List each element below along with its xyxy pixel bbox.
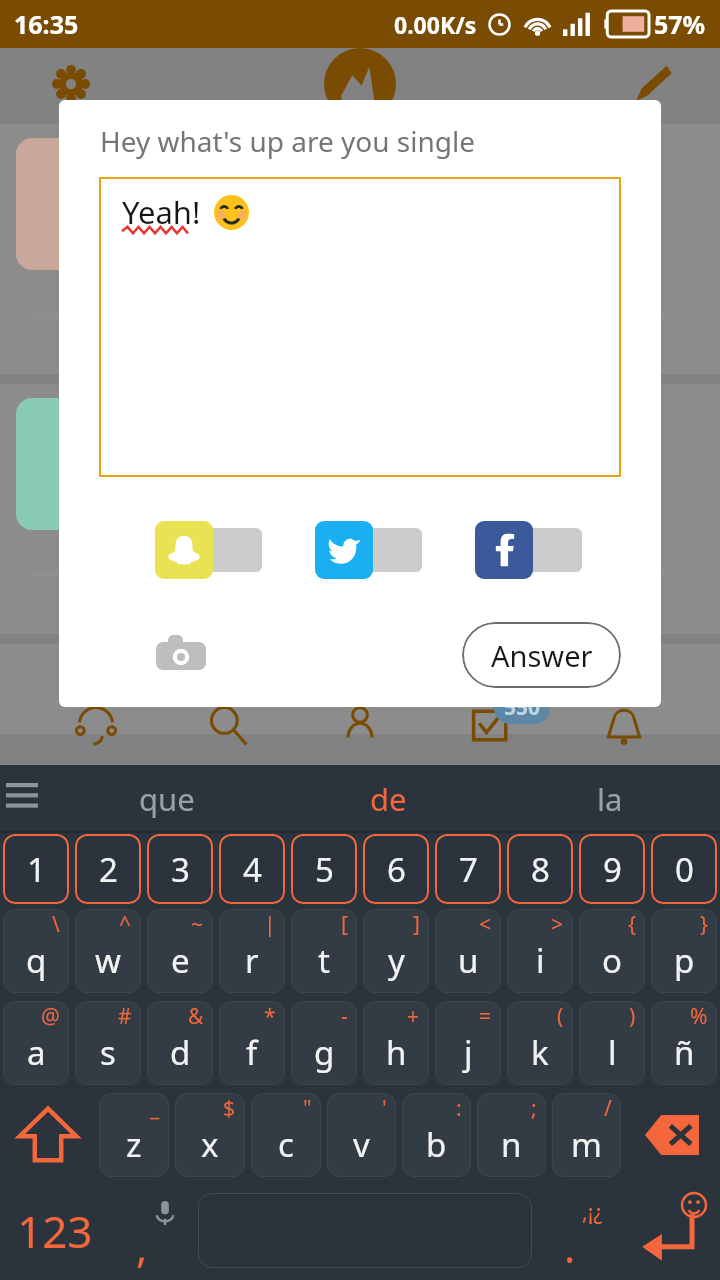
button[interactable]: "	[251, 1093, 321, 1177]
button[interactable]: *	[219, 1001, 285, 1085]
staticText: m	[571, 1122, 602, 1167]
staticText: 1	[27, 847, 46, 892]
button[interactable]: :	[402, 1093, 471, 1177]
button[interactable]: Twitter	[315, 521, 422, 579]
button[interactable]: )	[579, 1001, 645, 1085]
staticText: Hey what's up are you single	[100, 122, 475, 160]
staticText: 6	[387, 847, 406, 892]
staticText: ,¡¿	[582, 1198, 603, 1227]
staticText: ]	[413, 910, 420, 939]
button[interactable]: [	[291, 909, 357, 993]
button[interactable]: -	[291, 1001, 357, 1085]
staticText: 4	[243, 847, 262, 892]
button[interactable]: }	[651, 909, 717, 993]
staticText: #	[118, 1002, 132, 1031]
button[interactable]: Notifications	[588, 690, 660, 762]
button[interactable]: Answer	[462, 622, 621, 688]
button[interactable]: \	[3, 909, 69, 993]
button[interactable]: '	[327, 1093, 396, 1177]
staticText: 57%	[654, 7, 706, 41]
button[interactable]: 123	[0, 1181, 110, 1280]
button[interactable]: de	[278, 765, 499, 833]
staticText: *	[264, 1002, 276, 1031]
staticText: 16:35	[14, 7, 79, 41]
button[interactable]: Messages	[456, 690, 528, 762]
button[interactable]: |	[219, 909, 285, 993]
button[interactable]: la	[499, 765, 720, 833]
button[interactable]: 6	[363, 834, 429, 904]
button[interactable]: /	[552, 1093, 621, 1177]
button[interactable]: $	[175, 1093, 245, 1177]
staticText: 5	[315, 847, 334, 892]
button[interactable]: 0	[651, 834, 717, 904]
staticText: q	[26, 938, 47, 983]
staticText: :	[456, 1094, 462, 1123]
button[interactable]: =	[435, 1001, 501, 1085]
staticText: Yeah!	[122, 191, 201, 233]
staticText: +	[407, 1002, 420, 1031]
button[interactable]: 4	[219, 834, 285, 904]
button[interactable]: 5	[291, 834, 357, 904]
staticText: }	[700, 910, 708, 939]
button[interactable]: (	[507, 1001, 573, 1085]
staticText: d	[170, 1030, 191, 1075]
button[interactable]: ,	[110, 1181, 194, 1280]
staticText: p	[674, 938, 695, 983]
staticText: \	[52, 910, 60, 939]
staticText: @	[41, 1002, 60, 1031]
button[interactable]: #	[75, 1001, 141, 1085]
button[interactable]: que	[56, 765, 278, 833]
button[interactable]: Enter	[620, 1181, 720, 1280]
staticText: z	[126, 1122, 142, 1167]
button[interactable]: Camera	[151, 625, 211, 685]
button[interactable]: >	[507, 909, 573, 993]
button[interactable]: Backspace	[624, 1089, 720, 1181]
button[interactable]: Keyboard menu	[6, 783, 38, 815]
button[interactable]: 9	[579, 834, 645, 904]
button[interactable]: Home	[60, 690, 132, 762]
staticText: ñ	[674, 1030, 695, 1075]
staticText: s	[100, 1030, 116, 1075]
button[interactable]: +	[363, 1001, 429, 1085]
button[interactable]: Shift	[0, 1089, 96, 1181]
staticText: )	[629, 1002, 636, 1031]
staticText: ;	[531, 1094, 537, 1123]
staticText: g	[314, 1030, 335, 1075]
button[interactable]: ]	[363, 909, 429, 993]
button[interactable]: 3	[147, 834, 213, 904]
button[interactable]: 8	[507, 834, 573, 904]
button[interactable]: Facebook	[475, 521, 582, 579]
button[interactable]: @	[3, 1001, 69, 1085]
staticText: k	[531, 1030, 549, 1075]
button[interactable]: Yeah!	[99, 177, 621, 477]
staticText: [	[341, 910, 348, 939]
button[interactable]: Snapchat	[155, 521, 262, 579]
button[interactable]: 2	[75, 834, 141, 904]
button[interactable]: {	[579, 909, 645, 993]
staticText: {	[628, 910, 636, 939]
button[interactable]: Profile	[324, 690, 396, 762]
button[interactable]: Space	[198, 1193, 532, 1268]
staticText: ,	[136, 1218, 148, 1275]
staticText: i	[536, 938, 545, 983]
button[interactable]: 1	[3, 834, 69, 904]
button[interactable]: _	[99, 1093, 169, 1177]
staticText: y	[388, 938, 405, 983]
button[interactable]: 7	[435, 834, 501, 904]
button[interactable]: .	[536, 1181, 620, 1280]
button[interactable]: Search	[192, 690, 264, 762]
staticText: '	[382, 1094, 387, 1123]
staticText: l	[608, 1030, 617, 1075]
other: Settings	[50, 63, 92, 105]
button[interactable]: ;	[477, 1093, 546, 1177]
button[interactable]: %	[651, 1001, 717, 1085]
staticText: a	[27, 1030, 46, 1075]
staticText: 3	[171, 847, 190, 892]
staticText: Answer	[491, 636, 593, 675]
staticText: 0	[675, 847, 694, 892]
button[interactable]: ~	[147, 909, 213, 993]
button[interactable]: &	[147, 1001, 213, 1085]
staticText: -	[341, 1002, 348, 1031]
button[interactable]: <	[435, 909, 501, 993]
button[interactable]: ^	[75, 909, 141, 993]
